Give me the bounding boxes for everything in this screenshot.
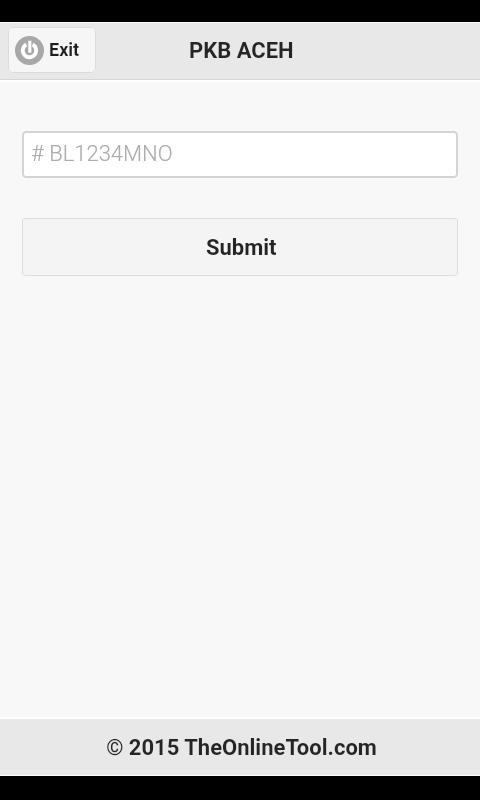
staticText: Submit (206, 235, 277, 261)
staticText: Exit (49, 39, 80, 60)
button[interactable]: Exit (8, 27, 96, 73)
button[interactable]: # BL1234MNO (22, 131, 458, 178)
staticText: # BL1234MNO (31, 141, 173, 167)
button[interactable]: Submit (22, 218, 458, 276)
staticText: © 2015 TheOnlineTool.com (106, 735, 377, 761)
staticText: PKB ACEH (189, 38, 294, 64)
